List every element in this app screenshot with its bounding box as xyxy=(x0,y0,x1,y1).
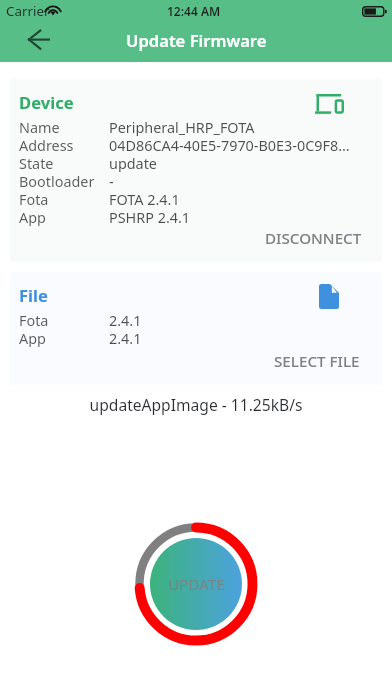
staticText: Carrier xyxy=(6,2,50,20)
staticText: - xyxy=(109,172,114,190)
staticText: Device xyxy=(19,91,74,114)
button[interactable]: DISCONNECT xyxy=(265,228,382,262)
button[interactable]: UPDATE xyxy=(134,522,258,646)
staticText: update xyxy=(109,154,157,172)
staticText: 2.4.1 xyxy=(109,329,142,347)
staticText: updateAppImage - 11.25kB/s xyxy=(0,394,392,415)
button[interactable]: SELECT FILE xyxy=(274,351,382,385)
staticText: File xyxy=(19,284,48,307)
staticText: Fota xyxy=(19,190,49,208)
staticText: App xyxy=(19,329,46,347)
staticText: Peripheral_HRP_FOTA xyxy=(109,118,255,136)
staticText: DISCONNECT xyxy=(265,228,362,249)
staticText: 12:44 AM xyxy=(167,3,221,19)
staticText: Name xyxy=(19,118,60,136)
staticText: State xyxy=(19,154,54,172)
staticText: Update Firmware xyxy=(126,29,267,52)
staticText: App xyxy=(19,208,46,226)
staticText: SELECT FILE xyxy=(274,351,360,372)
staticText: PSHRP 2.4.1 xyxy=(109,208,191,226)
staticText: 04D86CA4-40E5-7970-B0E3-0C9F8… xyxy=(109,136,350,154)
staticText: UPDATE xyxy=(168,574,225,595)
button[interactable]: Back xyxy=(18,26,50,58)
staticText: Bootloader xyxy=(19,172,95,190)
staticText: FOTA 2.4.1 xyxy=(109,190,180,208)
staticText: 2.4.1 xyxy=(109,311,142,329)
staticText: Fota xyxy=(19,311,49,329)
staticText: Address xyxy=(19,136,74,154)
